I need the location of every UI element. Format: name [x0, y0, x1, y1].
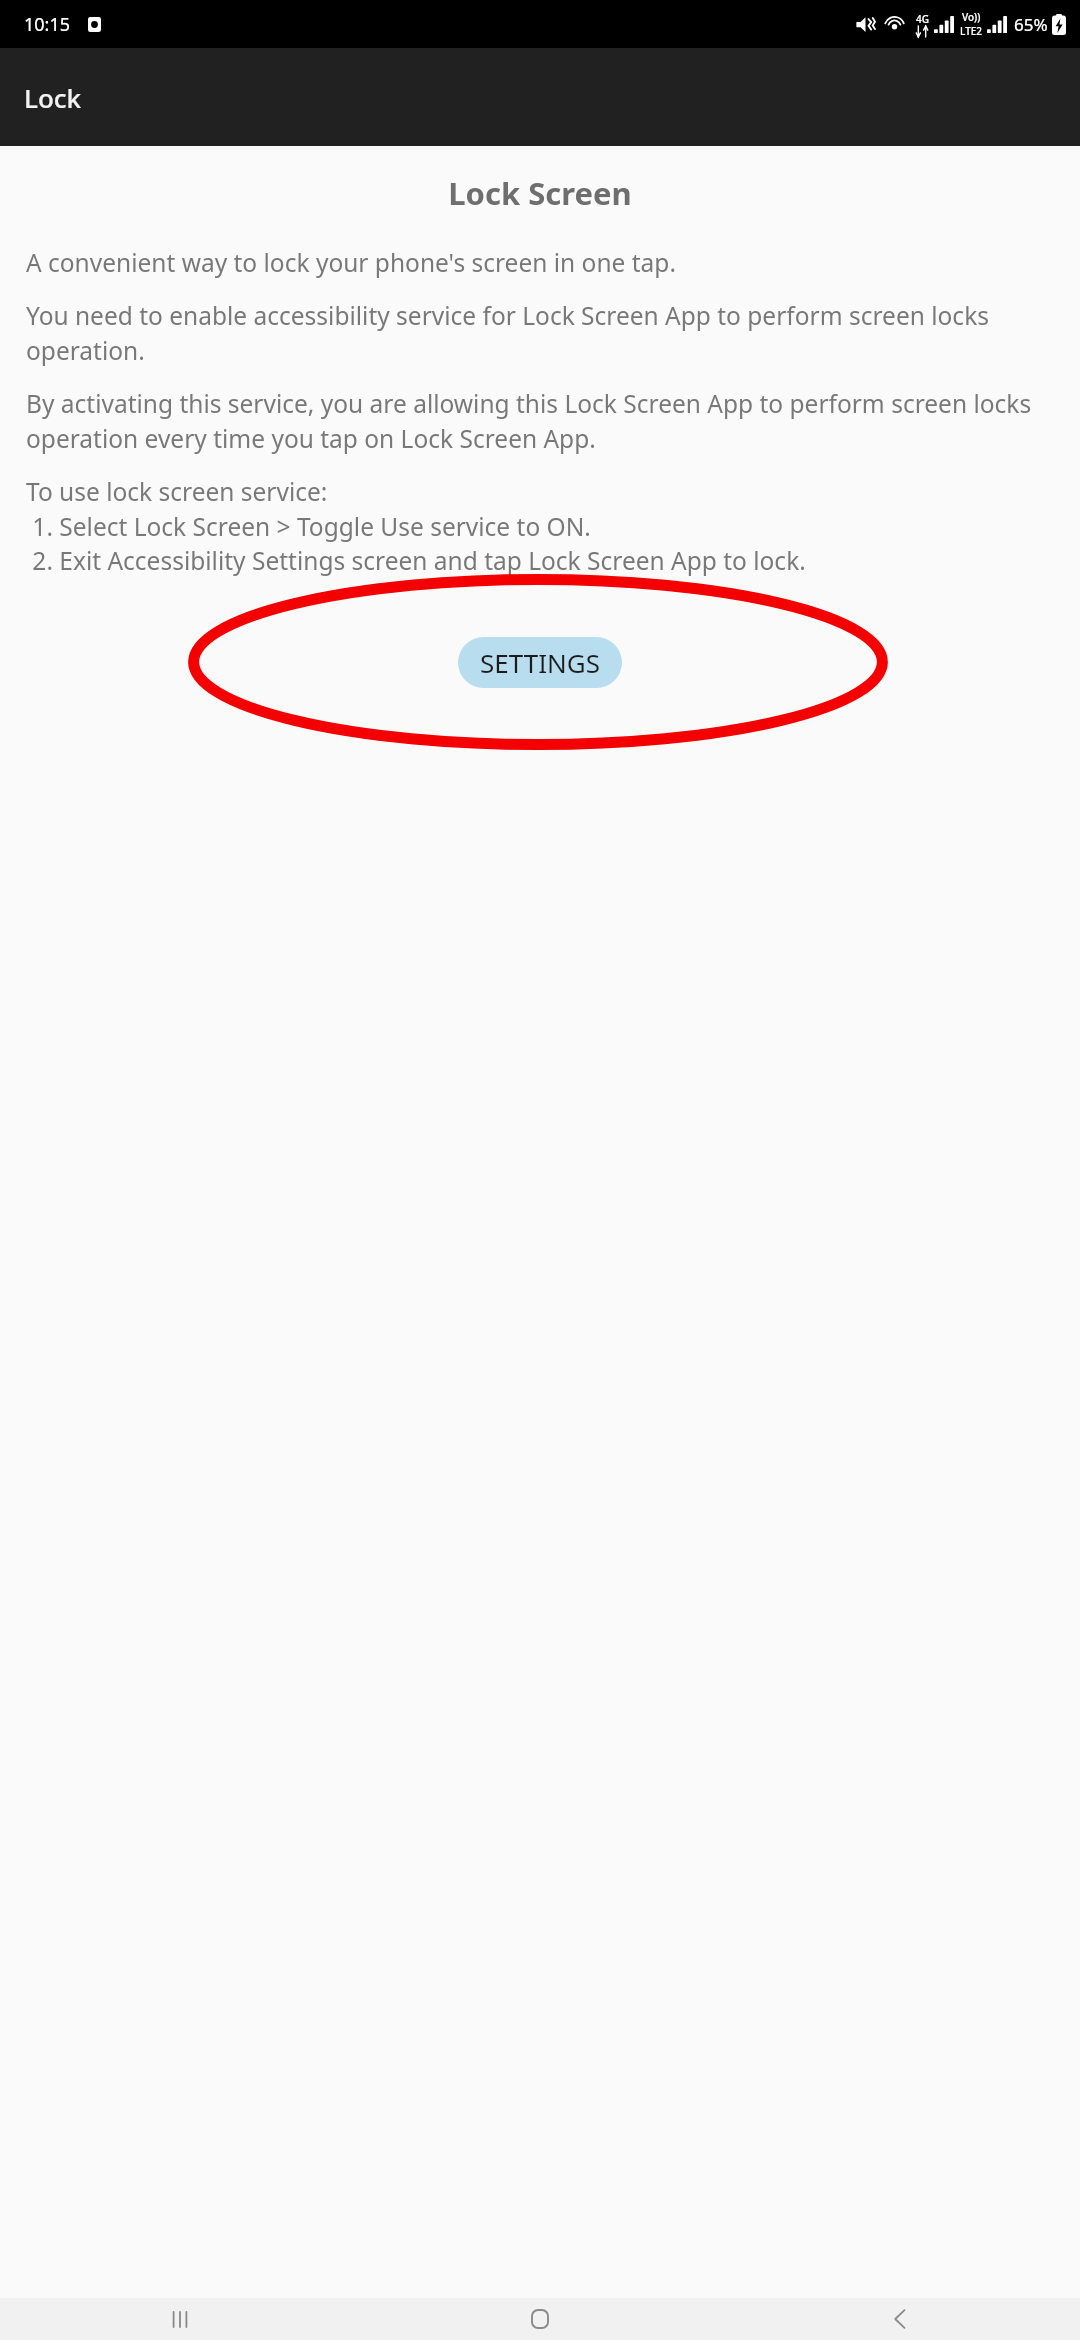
button[interactable]: SETTINGS	[458, 637, 622, 688]
staticText: 65%	[1014, 13, 1048, 36]
staticText: Lock	[24, 80, 82, 115]
button[interactable]: Home	[360, 2298, 720, 2340]
button[interactable]: Back	[720, 2298, 1080, 2340]
staticText: Lock Screen	[26, 172, 1054, 214]
staticText: Vo))	[962, 10, 981, 24]
staticText: SETTINGS	[480, 645, 600, 680]
button[interactable]: Recent apps	[0, 2298, 360, 2340]
staticText: 10:15	[24, 12, 71, 37]
button[interactable]: Lock	[0, 48, 1080, 146]
staticText: By activating this service, you are allo…	[26, 387, 1054, 455]
staticText: A convenient way to lock your phone's sc…	[26, 246, 676, 279]
staticText: LTE2	[960, 24, 983, 38]
staticText: 4G	[916, 12, 929, 26]
staticText: To use lock screen service: 1. Select Lo…	[26, 475, 806, 577]
staticText: You need to enable accessibility service…	[26, 299, 1054, 367]
